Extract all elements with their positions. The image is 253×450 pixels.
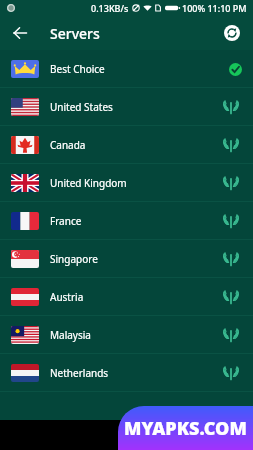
staticText: Netherlands — [50, 366, 109, 380]
staticText: 100% 11:10 PM — [182, 2, 247, 14]
button[interactable]: Singapore — [0, 240, 253, 278]
button[interactable]: Malaysia — [0, 316, 253, 354]
button[interactable]: Netherlands — [0, 354, 253, 392]
staticText: Malaysia — [50, 328, 91, 342]
button[interactable]: United Kingdom — [0, 164, 253, 202]
button[interactable]: United States — [0, 88, 253, 126]
button[interactable]: Rotate screen — [116, 424, 138, 446]
staticText: Servers — [50, 24, 100, 43]
staticText: Best Choice — [50, 62, 105, 76]
button[interactable]: France — [0, 202, 253, 240]
staticText: United Kingdom — [50, 176, 127, 190]
staticText: Singapore — [50, 252, 98, 266]
button[interactable]: Canada — [0, 126, 253, 164]
button[interactable]: Austria — [0, 278, 253, 316]
staticText: MYAPKS.COM — [124, 416, 247, 441]
button[interactable]: Refresh — [214, 16, 250, 50]
staticText: United States — [50, 100, 113, 114]
staticText: France — [50, 214, 82, 228]
staticText: Austria — [50, 290, 84, 304]
staticText: Canada — [50, 138, 86, 152]
button[interactable]: Back — [0, 16, 40, 50]
staticText: 0.13KB/s — [91, 2, 129, 14]
button[interactable]: Best Choice — [0, 50, 253, 88]
